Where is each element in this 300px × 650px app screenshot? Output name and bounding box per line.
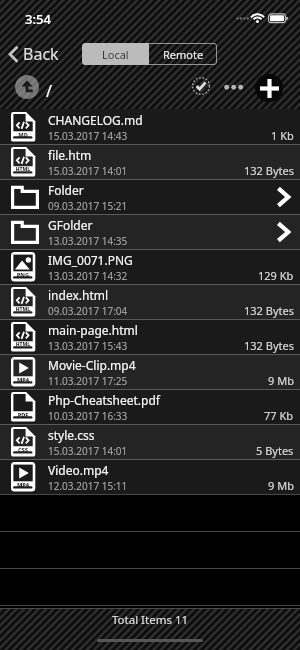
staticText: IMG_0071.PNG [48, 252, 133, 268]
staticText: 9 Mb [268, 373, 294, 388]
staticText: 15.03.2017 14:01 [48, 444, 128, 458]
staticText: Movie-Clip.mp4 [48, 357, 136, 373]
button[interactable]: GFolder [0, 214, 300, 249]
staticText: index.html [48, 287, 109, 303]
button[interactable]: HTML [0, 144, 300, 179]
button[interactable]: Remote [149, 43, 217, 65]
button[interactable]: Select items [192, 77, 210, 95]
staticText: 132 Bytes [244, 163, 294, 178]
staticText: CHANGELOG.md [48, 112, 143, 128]
staticText: 1 Kb [271, 128, 294, 143]
button[interactable]: Local [82, 43, 149, 65]
staticText: CSS [11, 446, 35, 454]
staticText: 5 Bytes [256, 443, 294, 458]
staticText: 10.03.2017 16:33 [48, 409, 128, 423]
button[interactable]: MP4 [0, 354, 300, 389]
button[interactable]: MD [0, 109, 300, 144]
staticText: file.htm [48, 147, 92, 163]
staticText: 11.03.2017 17:25 [48, 374, 128, 388]
button[interactable]: HTML [0, 284, 300, 319]
staticText: main-page.html [48, 322, 138, 338]
staticText: 132 Bytes [244, 338, 294, 353]
staticText: Remote [163, 47, 204, 62]
staticText: 12.03.2017 15:11 [48, 479, 128, 493]
staticText: MD [11, 131, 35, 139]
button[interactable]: Add new [255, 74, 283, 102]
staticText: 09.03.2017 15:21 [48, 199, 128, 213]
staticText: PNG [11, 271, 35, 279]
staticText: HTML [11, 341, 35, 348]
button[interactable]: PNG [0, 249, 300, 284]
staticText: 13.03.2017 14:35 [48, 234, 128, 248]
staticText: 129 Kb [258, 268, 294, 283]
staticText: MP4 [11, 481, 35, 489]
button[interactable]: Back [3, 41, 65, 67]
staticText: Php-Cheatsheet.pdf [48, 392, 160, 408]
button[interactable]: PDF [0, 389, 300, 424]
staticText: Local [102, 47, 129, 62]
staticText: style.css [48, 427, 95, 443]
staticText: 77 Kb [264, 408, 294, 423]
staticText: 09.03.2017 17:04 [48, 304, 128, 318]
staticText: 15.03.2017 14:01 [48, 164, 128, 178]
staticText: HTML [11, 306, 35, 313]
staticText: Folder [48, 182, 84, 198]
staticText: GFolder [48, 217, 93, 233]
staticText: MP4 [11, 376, 35, 384]
staticText: PDF [11, 411, 35, 419]
button[interactable]: CSS [0, 424, 300, 459]
button[interactable]: Folder [0, 179, 300, 214]
staticText: 13.03.2017 15:43 [48, 339, 128, 353]
staticText: / [46, 80, 52, 102]
button[interactable]: Up one level [15, 75, 39, 99]
button[interactable]: More options [221, 78, 246, 97]
button[interactable]: HTML [0, 319, 300, 354]
staticText: Total Items 11 [112, 612, 189, 628]
staticText: 132 Bytes [244, 303, 294, 318]
staticText: Back [23, 43, 59, 65]
staticText: HTML [11, 166, 35, 173]
button[interactable]: MP4 [0, 459, 300, 494]
staticText: Video.mp4 [48, 462, 109, 478]
staticText: 13.03.2017 14:32 [48, 269, 128, 283]
staticText: 3:54 [25, 10, 51, 28]
staticText: 9 Mb [268, 478, 294, 493]
staticText: 15.03.2017 14:43 [48, 129, 128, 143]
